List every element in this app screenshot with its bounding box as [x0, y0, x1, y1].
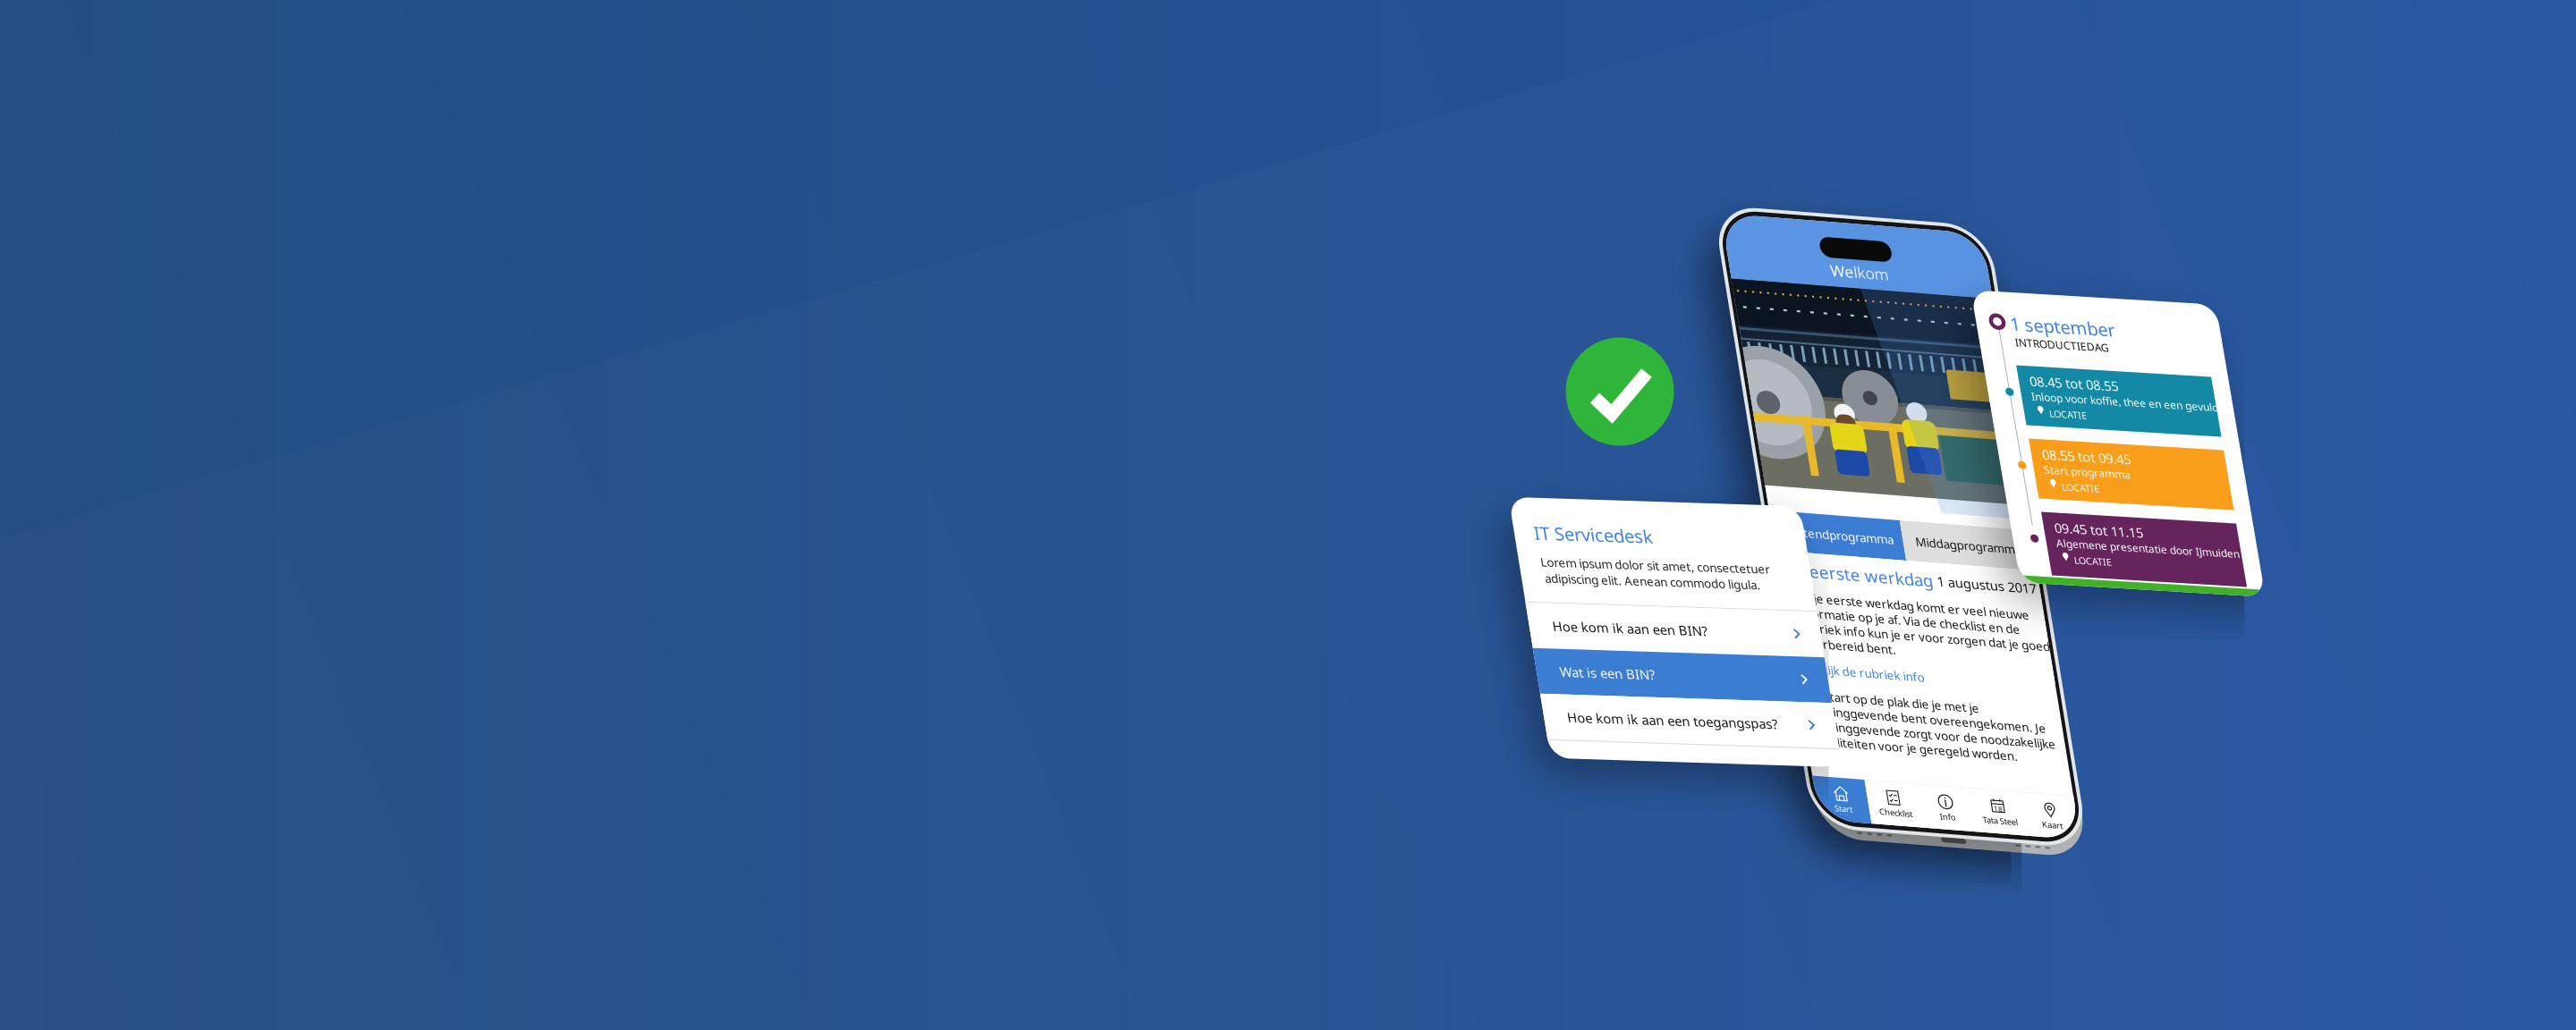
button[interactable]: Checklist: [1772, 775, 1824, 820]
staticText: INTRODUCTIEDAG: [2006, 333, 2100, 347]
staticText: Checklist: [1781, 800, 1814, 812]
staticText: Hoe kom ik aan een BIN?: [1532, 616, 1686, 634]
staticText: Middagprogramma: [1863, 522, 1968, 538]
button[interactable]: Middagprogramma: [1850, 510, 1981, 550]
staticText: leidinggevende zorgt voor de noodzakelij…: [1731, 716, 1971, 732]
button[interactable]: Start: [1719, 775, 1772, 820]
button[interactable]: Hoe kom ik aan een BIN?: [1508, 602, 1800, 648]
button[interactable]: Wat is een BIN?: [1508, 648, 1800, 694]
staticText: Inloop voor koffie, thee en een gevulde: [2014, 387, 2207, 401]
staticText: Op je eerste werkdag komt er veel nieuwe: [1731, 587, 1965, 603]
staticText: leidinggevende bent overeengekomen. Je: [1731, 701, 1964, 717]
staticText: informatie op je af. Via de checklist en…: [1731, 603, 1954, 618]
staticText: 08.45 tot 08.55: [2014, 370, 2103, 387]
button[interactable]: Bekijk de rubriek info: [1731, 659, 1849, 675]
staticText: Lorem ipsum dolor sit amet, consectetuer: [1530, 553, 1760, 569]
staticText: Je start op de plak die je met je: [1731, 686, 1899, 702]
button[interactable]: Kaart: [1928, 775, 1981, 820]
staticText: IT Servicedesk: [1528, 520, 1647, 544]
staticText: Start programma: [2014, 460, 2100, 474]
staticText: Bekijk de rubriek info: [1731, 659, 1849, 675]
button[interactable]: Hoe kom ik aan een toegangspas?: [1508, 694, 1800, 739]
staticText: Hoe kom ik aan een toegangspas?: [1532, 708, 1742, 725]
staticText: Info: [1842, 800, 1858, 812]
button[interactable]: Ochtendprogramma: [1719, 510, 1850, 550]
button[interactable]: i: [1824, 775, 1876, 820]
staticText: Ochtendprogramma: [1729, 522, 1841, 538]
staticText: Algemene presentatie door IJmuiden: [2014, 533, 2197, 547]
staticText: LOCATIE: [2029, 404, 2066, 416]
staticText: Kaart: [1944, 800, 1965, 812]
staticText: Tata Steel: [1885, 800, 1920, 812]
staticText: rubriek info kun je er voor zorgen dat j…: [1731, 618, 1982, 634]
staticText: Wat is een BIN?: [1532, 662, 1627, 680]
button[interactable]: 18: [1876, 775, 1928, 820]
staticText: 08.55 tot 09.45: [2014, 443, 2103, 460]
staticText: 1 augustus 2017: [1878, 559, 1977, 577]
staticText: faciliteiten voor je geregeld worden.: [1731, 731, 1931, 747]
staticText: LOCATIE: [2029, 477, 2066, 490]
staticText: 09.45 tot 11.15: [2014, 516, 2103, 534]
staticText: adipiscing elit. Aenean commodo ligula.: [1532, 569, 1747, 585]
staticText: Welkom: [1821, 251, 1879, 272]
staticText: LOCATIE: [2029, 550, 2066, 563]
staticText: voorbereid bent.: [1731, 633, 1825, 649]
staticText: 18: [1898, 789, 1907, 799]
staticText: 1 september: [2005, 310, 2109, 333]
staticText: Je eerste werkdag: [1731, 557, 1873, 579]
